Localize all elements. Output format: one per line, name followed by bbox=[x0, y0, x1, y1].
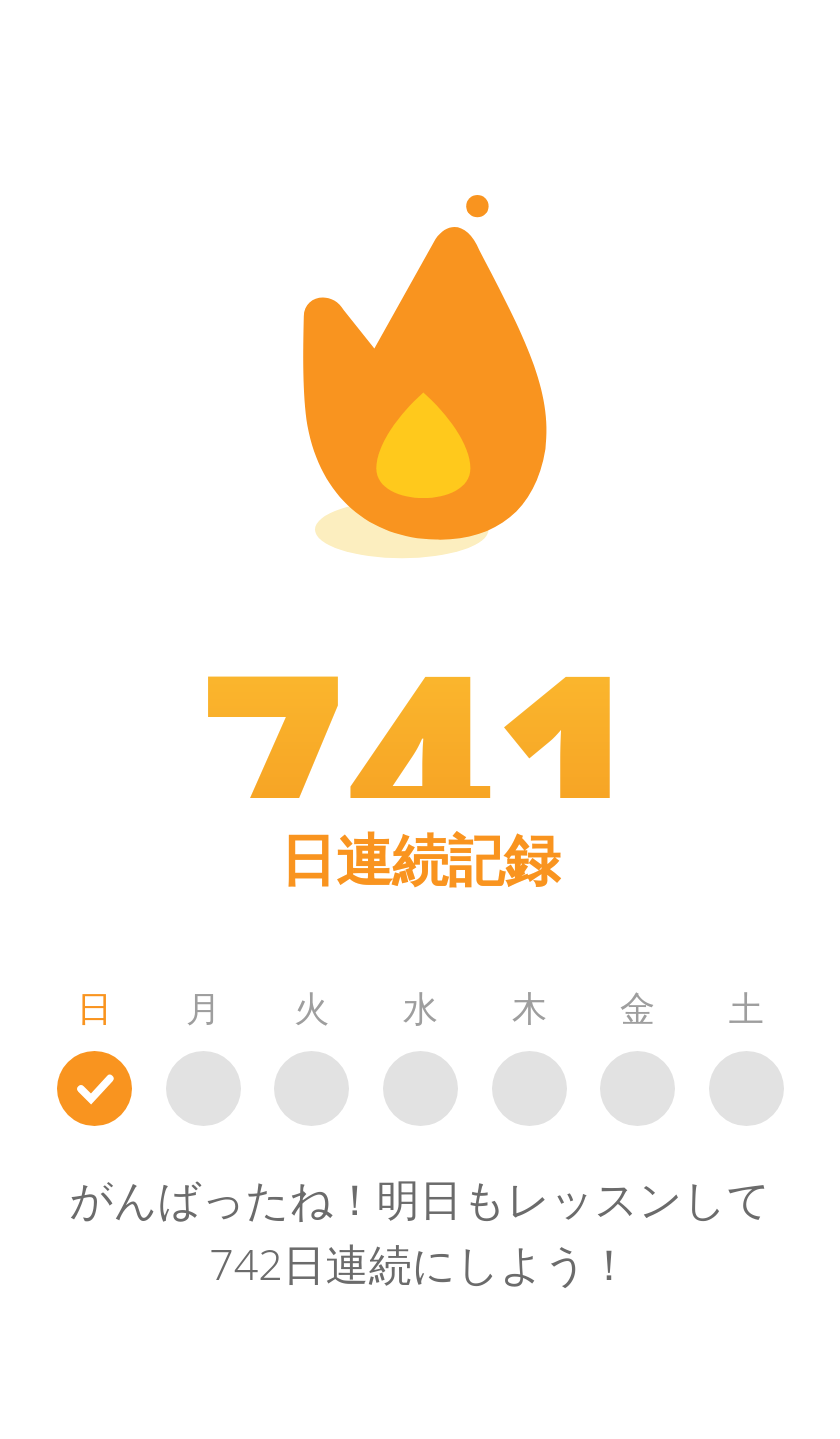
staticText: 火 bbox=[294, 987, 329, 1031]
staticText: 土 bbox=[729, 987, 764, 1031]
staticText: がんばったね！明日もレッスンして 742日連続にしよう！ bbox=[32, 1174, 808, 1292]
button[interactable]: 月 未完了 bbox=[166, 1051, 241, 1126]
button[interactable]: 土 未完了 bbox=[709, 1051, 784, 1126]
staticText: 月 bbox=[186, 987, 221, 1031]
staticText: 日連続記録 bbox=[280, 826, 560, 897]
staticText: 金 bbox=[620, 987, 655, 1031]
button[interactable]: 水 未完了 bbox=[383, 1051, 458, 1126]
button[interactable]: 火 未完了 bbox=[274, 1051, 349, 1126]
staticText: 木 bbox=[512, 987, 547, 1031]
staticText: 日 bbox=[77, 987, 112, 1031]
button[interactable]: 日 完了 bbox=[57, 1051, 132, 1126]
button[interactable]: 金 未完了 bbox=[600, 1051, 675, 1126]
staticText: 水 bbox=[403, 987, 438, 1031]
button[interactable]: 木 未完了 bbox=[492, 1051, 567, 1126]
staticText: 741 bbox=[198, 588, 642, 798]
